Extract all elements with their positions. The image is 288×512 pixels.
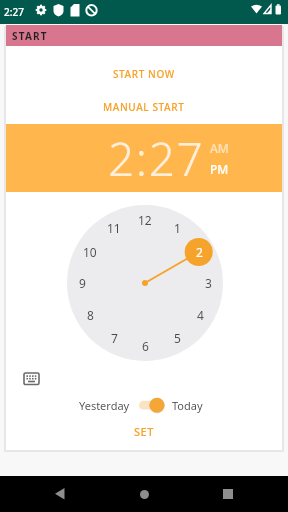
- staticText: 9: [79, 275, 86, 291]
- staticText: 12: [138, 212, 152, 228]
- staticText: SET: [134, 424, 154, 439]
- staticText: 2:27: [4, 5, 24, 19]
- button[interactable]: AM: [210, 140, 229, 156]
- staticText: 7: [111, 330, 118, 346]
- staticText: 2: [196, 244, 203, 260]
- staticText: 2:27: [108, 127, 205, 190]
- staticText: START NOW: [113, 67, 175, 81]
- staticText: 5: [174, 330, 181, 346]
- staticText: 4: [197, 307, 204, 323]
- button[interactable]: [32, 476, 88, 512]
- button[interactable]: [200, 476, 256, 512]
- button[interactable]: SET: [114, 423, 174, 439]
- staticText: 3: [205, 275, 212, 291]
- button[interactable]: Yesterday: [79, 398, 130, 413]
- staticText: 1: [174, 220, 181, 236]
- button[interactable]: [139, 397, 165, 413]
- staticText: 6: [142, 338, 149, 354]
- staticText: MANUAL START: [103, 100, 185, 114]
- staticText: 10: [83, 244, 97, 260]
- staticText: 8: [87, 307, 94, 323]
- staticText: START: [12, 29, 48, 43]
- button[interactable]: START NOW: [6, 63, 282, 84]
- button[interactable]: Today: [172, 398, 203, 413]
- button[interactable]: [24, 373, 39, 385]
- button[interactable]: MANUAL START: [6, 96, 282, 117]
- button[interactable]: [116, 476, 172, 512]
- staticText: 11: [107, 220, 121, 236]
- button[interactable]: PM: [210, 161, 229, 177]
